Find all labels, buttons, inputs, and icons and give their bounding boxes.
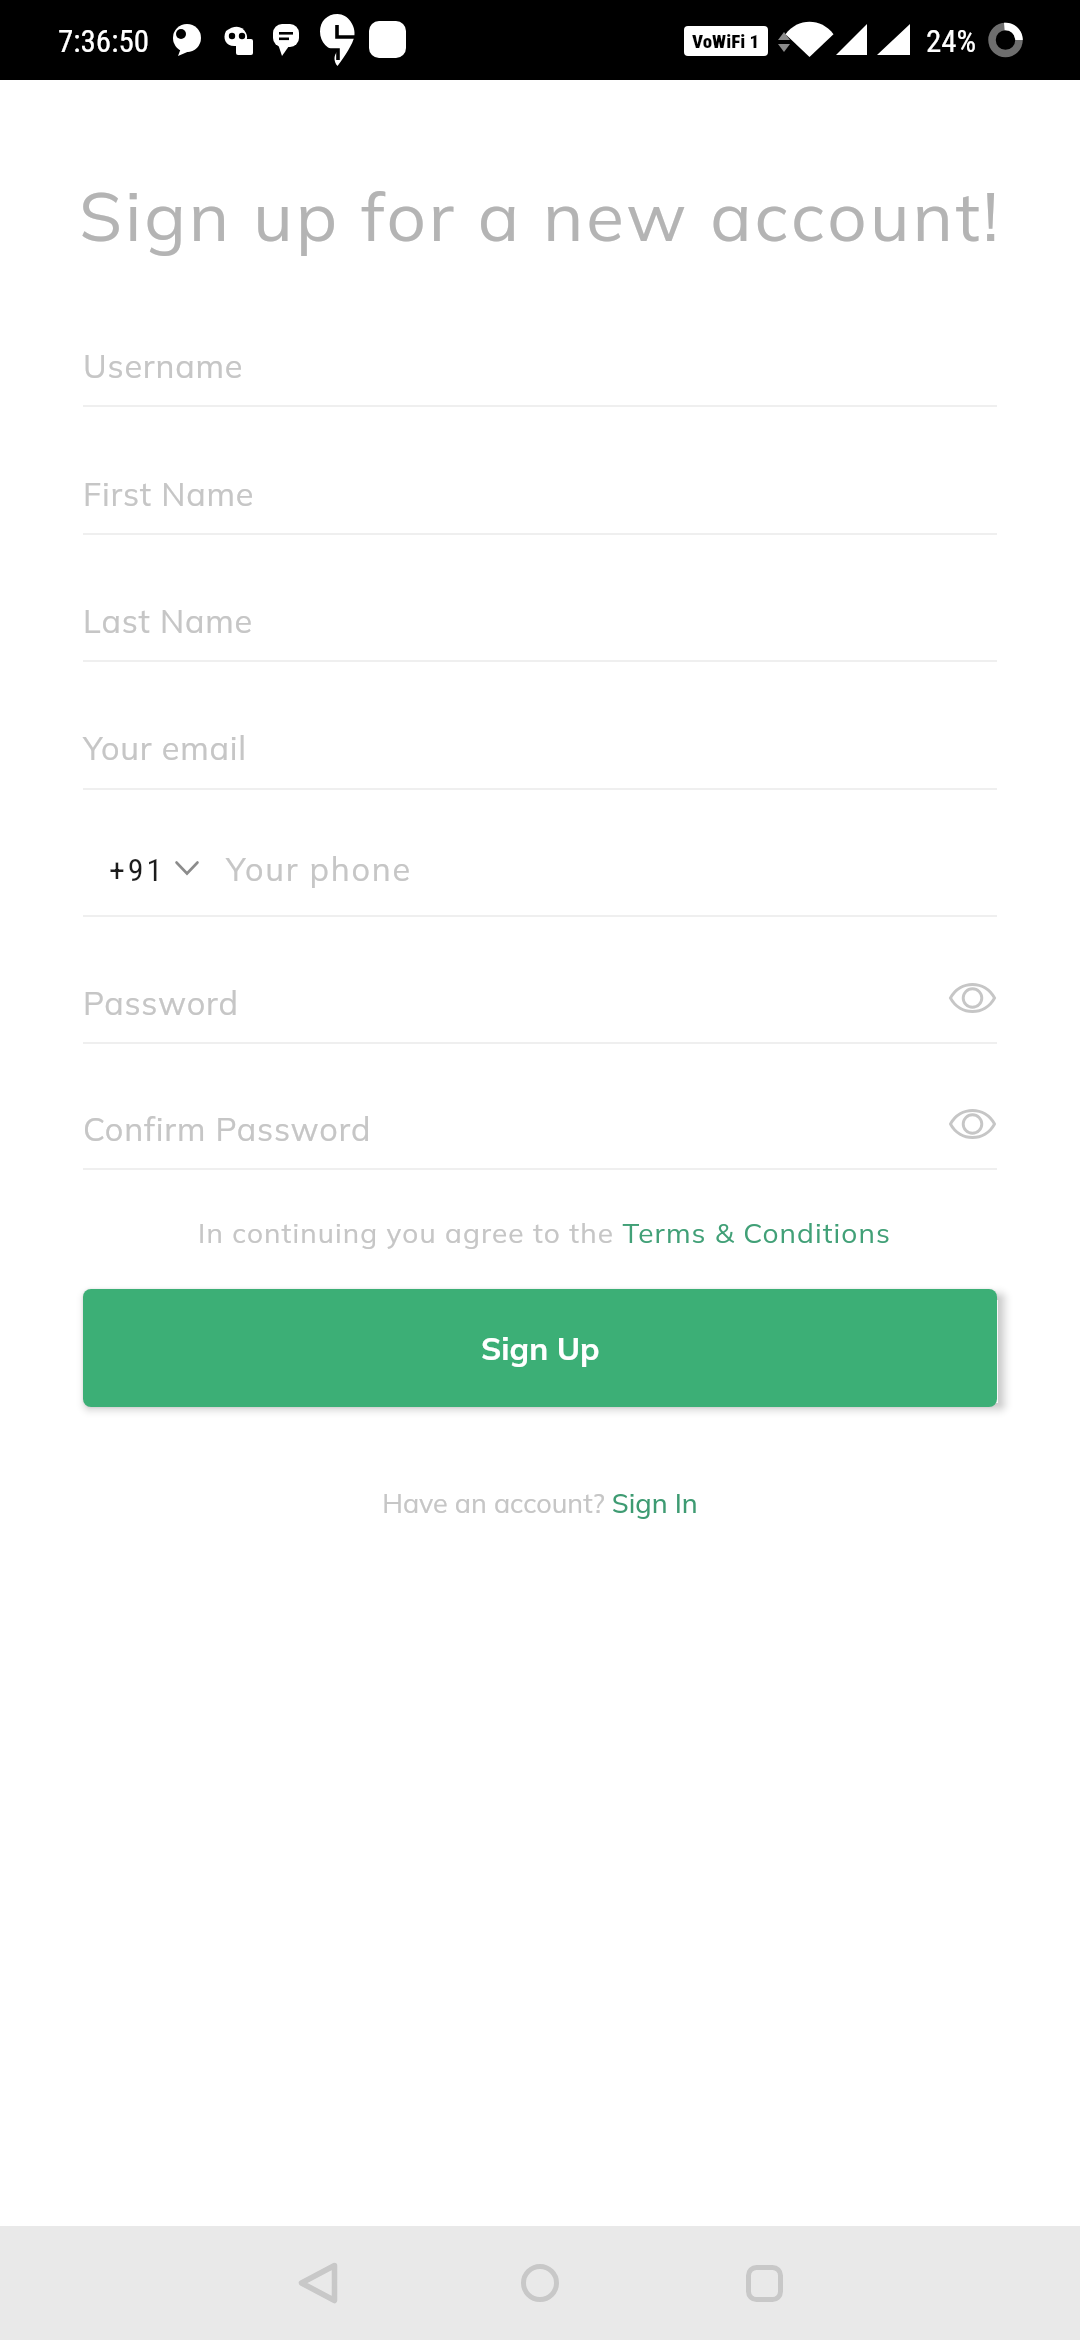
staticText: +91 <box>109 851 166 889</box>
staticText: Last Name <box>83 600 254 641</box>
staticText: First Name <box>83 473 255 514</box>
staticText: Password <box>83 982 239 1023</box>
staticText: VoWiFi 1 <box>692 30 760 52</box>
staticText: Username <box>83 345 244 386</box>
button[interactable] <box>83 559 997 660</box>
button[interactable] <box>83 432 997 533</box>
staticText: Confirm Password <box>83 1108 372 1149</box>
staticText: Your phone <box>226 848 412 889</box>
button[interactable]: Toggle password visibility <box>928 1080 1016 1168</box>
button[interactable]: Toggle password visibility <box>928 954 1016 1042</box>
button[interactable] <box>83 1067 997 1168</box>
button[interactable]: Back <box>258 2226 378 2340</box>
button[interactable]: In continuing you agree to the Terms & C… <box>87 1204 1001 1260</box>
button[interactable] <box>83 941 997 1042</box>
button[interactable]: Home <box>480 2226 600 2340</box>
button[interactable]: Have an account? Sign In <box>83 1477 997 1529</box>
button[interactable] <box>83 304 997 405</box>
button[interactable] <box>83 687 997 788</box>
staticText: Sign Up <box>481 1328 600 1368</box>
staticText: Your email <box>83 727 247 768</box>
button[interactable]: Recent apps <box>704 2226 824 2340</box>
staticText: In continuing you agree to the Terms & C… <box>198 1215 891 1250</box>
staticText: 24% <box>926 23 977 59</box>
staticText: Have an account? Sign In <box>382 1486 698 1520</box>
button[interactable]: Sign Up <box>83 1289 997 1407</box>
staticText: Sign up for a new account! <box>79 172 1002 259</box>
button[interactable]: Select country code <box>96 831 200 911</box>
staticText: 7:36:50 <box>58 23 149 59</box>
